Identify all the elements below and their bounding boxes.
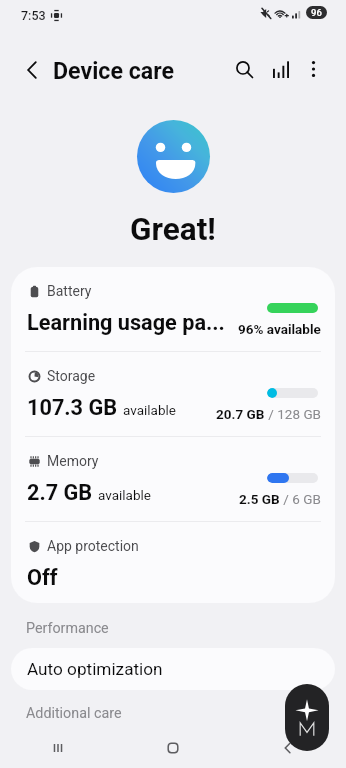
staticText: Storage [47,368,96,384]
staticText: / 128 GB [265,406,321,422]
button[interactable]: App protection [11,522,335,603]
staticText: 2.7 GB [27,480,93,505]
staticText: available [123,402,176,418]
staticText: 96% available [238,321,321,337]
button[interactable]: Back [265,728,311,768]
button[interactable]: Storage [11,352,335,436]
button[interactable]: Auto optimization [11,648,335,690]
button[interactable]: Recents [35,728,81,768]
staticText: Auto optimization [27,659,163,679]
staticText: Performance [26,620,109,637]
staticText: Additional care [26,705,122,722]
staticText: 107.3 GB [27,395,118,420]
staticText: Battery [47,283,92,299]
staticText: Device care [53,57,174,84]
button[interactable]: Navigate up [14,52,50,88]
staticText: 20.7 GB [216,406,265,422]
staticText: Learning usage pa... [27,310,225,335]
staticText: 96 [311,7,322,18]
staticText: 7:53 [21,8,46,23]
staticText: Memory [47,453,99,469]
button[interactable]: More options [295,51,331,87]
staticText: Off [27,565,58,590]
button[interactable]: Usage statistics [263,51,299,87]
staticText: / 6 GB [280,491,321,507]
button[interactable]: Search [226,51,262,87]
button[interactable]: Home [150,728,196,768]
button[interactable]: Assistant [285,684,329,751]
button[interactable]: Battery [11,267,335,351]
staticText: App protection [47,538,139,554]
button[interactable]: Memory [11,437,335,521]
staticText: 2.5 GB [239,491,280,507]
staticText: available [98,487,151,503]
staticText: Great! [0,211,346,248]
